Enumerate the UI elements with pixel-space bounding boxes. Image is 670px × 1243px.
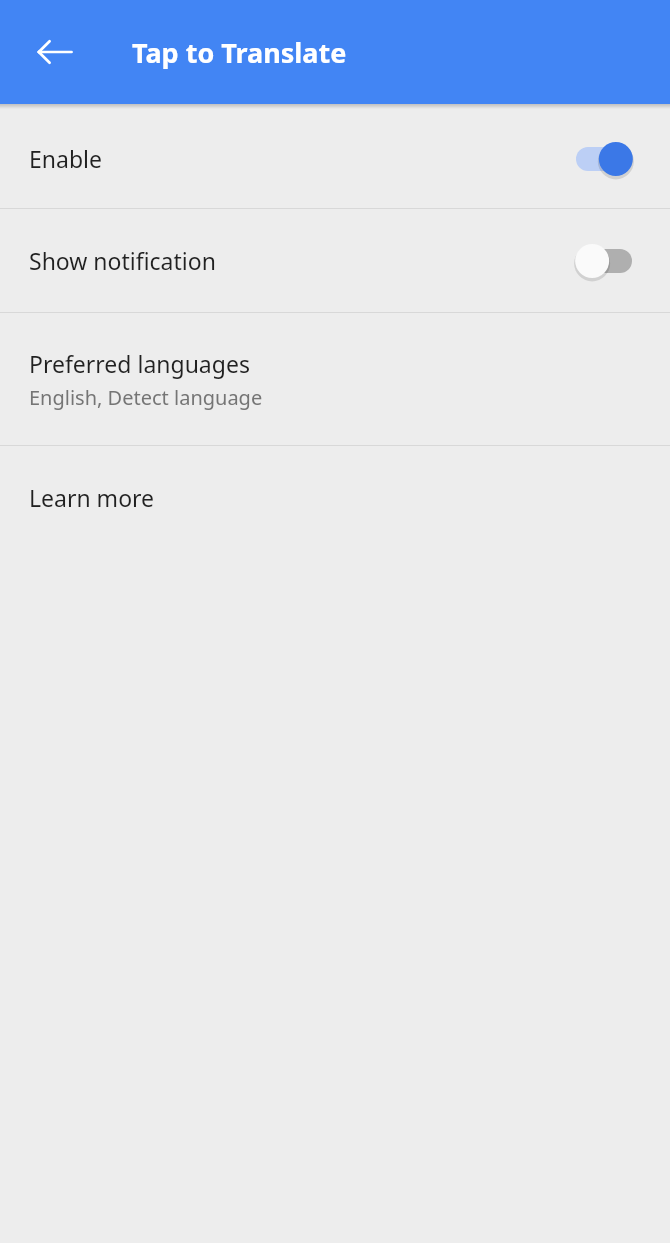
button[interactable]: Preferred languages (0, 313, 670, 445)
staticText: Tap to Translate (132, 34, 347, 71)
button[interactable]: Learn more (0, 446, 670, 549)
button[interactable]: Back (27, 24, 83, 80)
staticText: Preferred languages (29, 348, 250, 379)
staticText: Enable (29, 143, 102, 174)
staticText: Show notification (29, 245, 216, 276)
button[interactable]: Off (572, 239, 644, 283)
button[interactable]: Enable (0, 109, 670, 208)
button[interactable]: Show notification (0, 209, 670, 312)
staticText: English, Detect language (29, 384, 263, 411)
staticText: Learn more (29, 482, 155, 513)
button[interactable]: On (572, 137, 644, 181)
